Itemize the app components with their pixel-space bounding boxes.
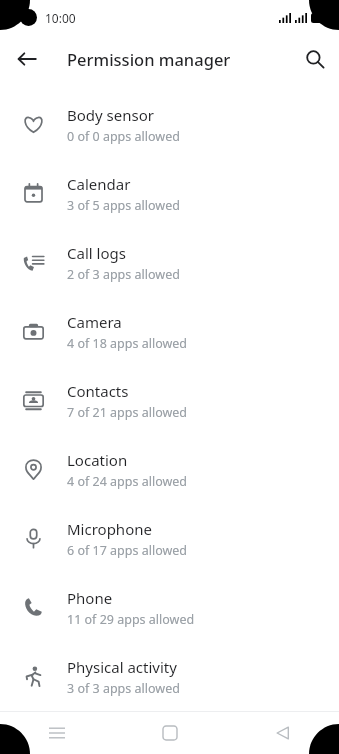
staticText: 4 of 24 apps allowed: [67, 473, 188, 490]
staticText: Microphone: [67, 519, 152, 539]
button[interactable]: Body sensor: [0, 90, 339, 159]
staticText: Call logs: [67, 243, 126, 263]
button[interactable]: Phone: [0, 573, 339, 642]
button[interactable]: Back: [226, 711, 339, 754]
staticText: 7 of 21 apps allowed: [67, 404, 188, 421]
staticText: 0 of 0 apps allowed: [67, 128, 180, 145]
button[interactable]: Home: [113, 711, 226, 754]
button[interactable]: Search: [293, 37, 337, 81]
staticText: Body sensor: [67, 105, 154, 125]
button[interactable]: Physical activity: [0, 642, 339, 711]
button[interactable]: Microphone: [0, 504, 339, 573]
button[interactable]: Location: [0, 435, 339, 504]
staticText: Permission manager: [67, 48, 231, 70]
staticText: 4 of 18 apps allowed: [67, 335, 188, 352]
button[interactable]: Back: [5, 37, 49, 81]
staticText: Camera: [67, 312, 122, 332]
staticText: Contacts: [67, 381, 129, 401]
staticText: Phone: [67, 588, 113, 608]
staticText: 6 of 17 apps allowed: [67, 542, 188, 559]
staticText: 10:00: [45, 10, 76, 26]
staticText: 11 of 29 apps allowed: [67, 611, 195, 628]
staticText: 3 of 3 apps allowed: [67, 680, 180, 697]
staticText: Physical activity: [67, 657, 177, 677]
button[interactable]: Call logs: [0, 228, 339, 297]
staticText: Calendar: [67, 174, 131, 194]
staticText: 2 of 3 apps allowed: [67, 266, 180, 283]
staticText: Location: [67, 450, 128, 470]
button[interactable]: Calendar: [0, 159, 339, 228]
button[interactable]: Camera: [0, 297, 339, 366]
button[interactable]: Contacts: [0, 366, 339, 435]
button[interactable]: Recent apps: [0, 711, 113, 754]
staticText: 3 of 5 apps allowed: [67, 197, 180, 214]
